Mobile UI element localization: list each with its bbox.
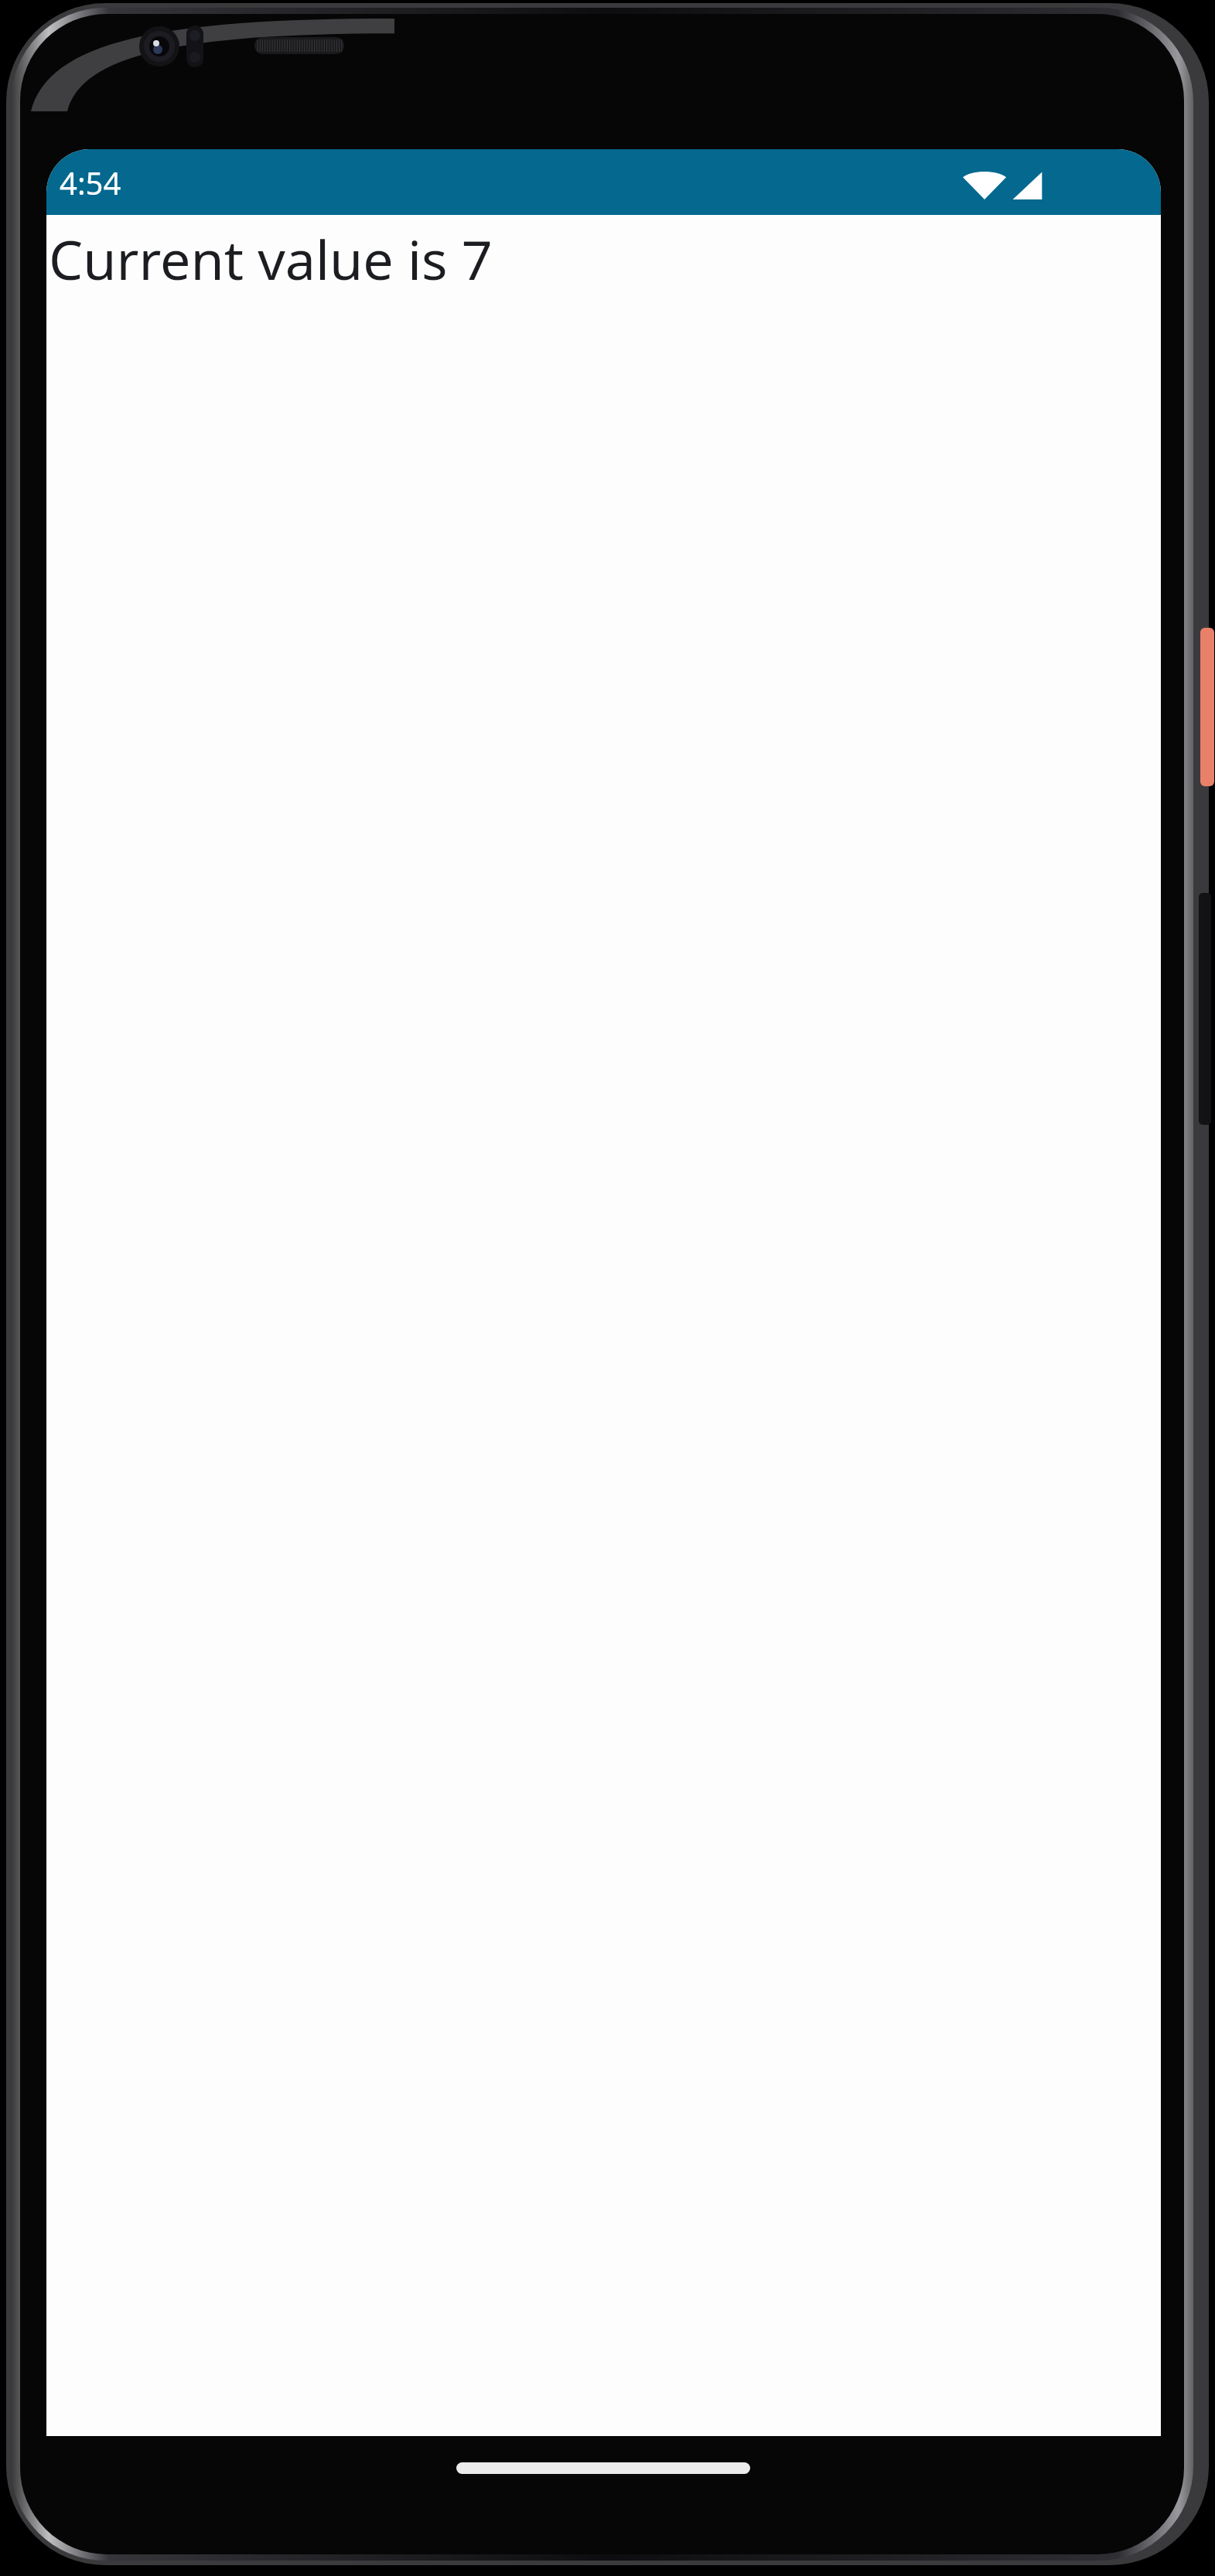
- staticText: 4:54: [60, 162, 121, 203]
- button[interactable]: Current value is 7: [49, 222, 493, 295]
- other: Wi-Fi signal: [963, 164, 1006, 201]
- other: Cellular signal: [1011, 164, 1043, 201]
